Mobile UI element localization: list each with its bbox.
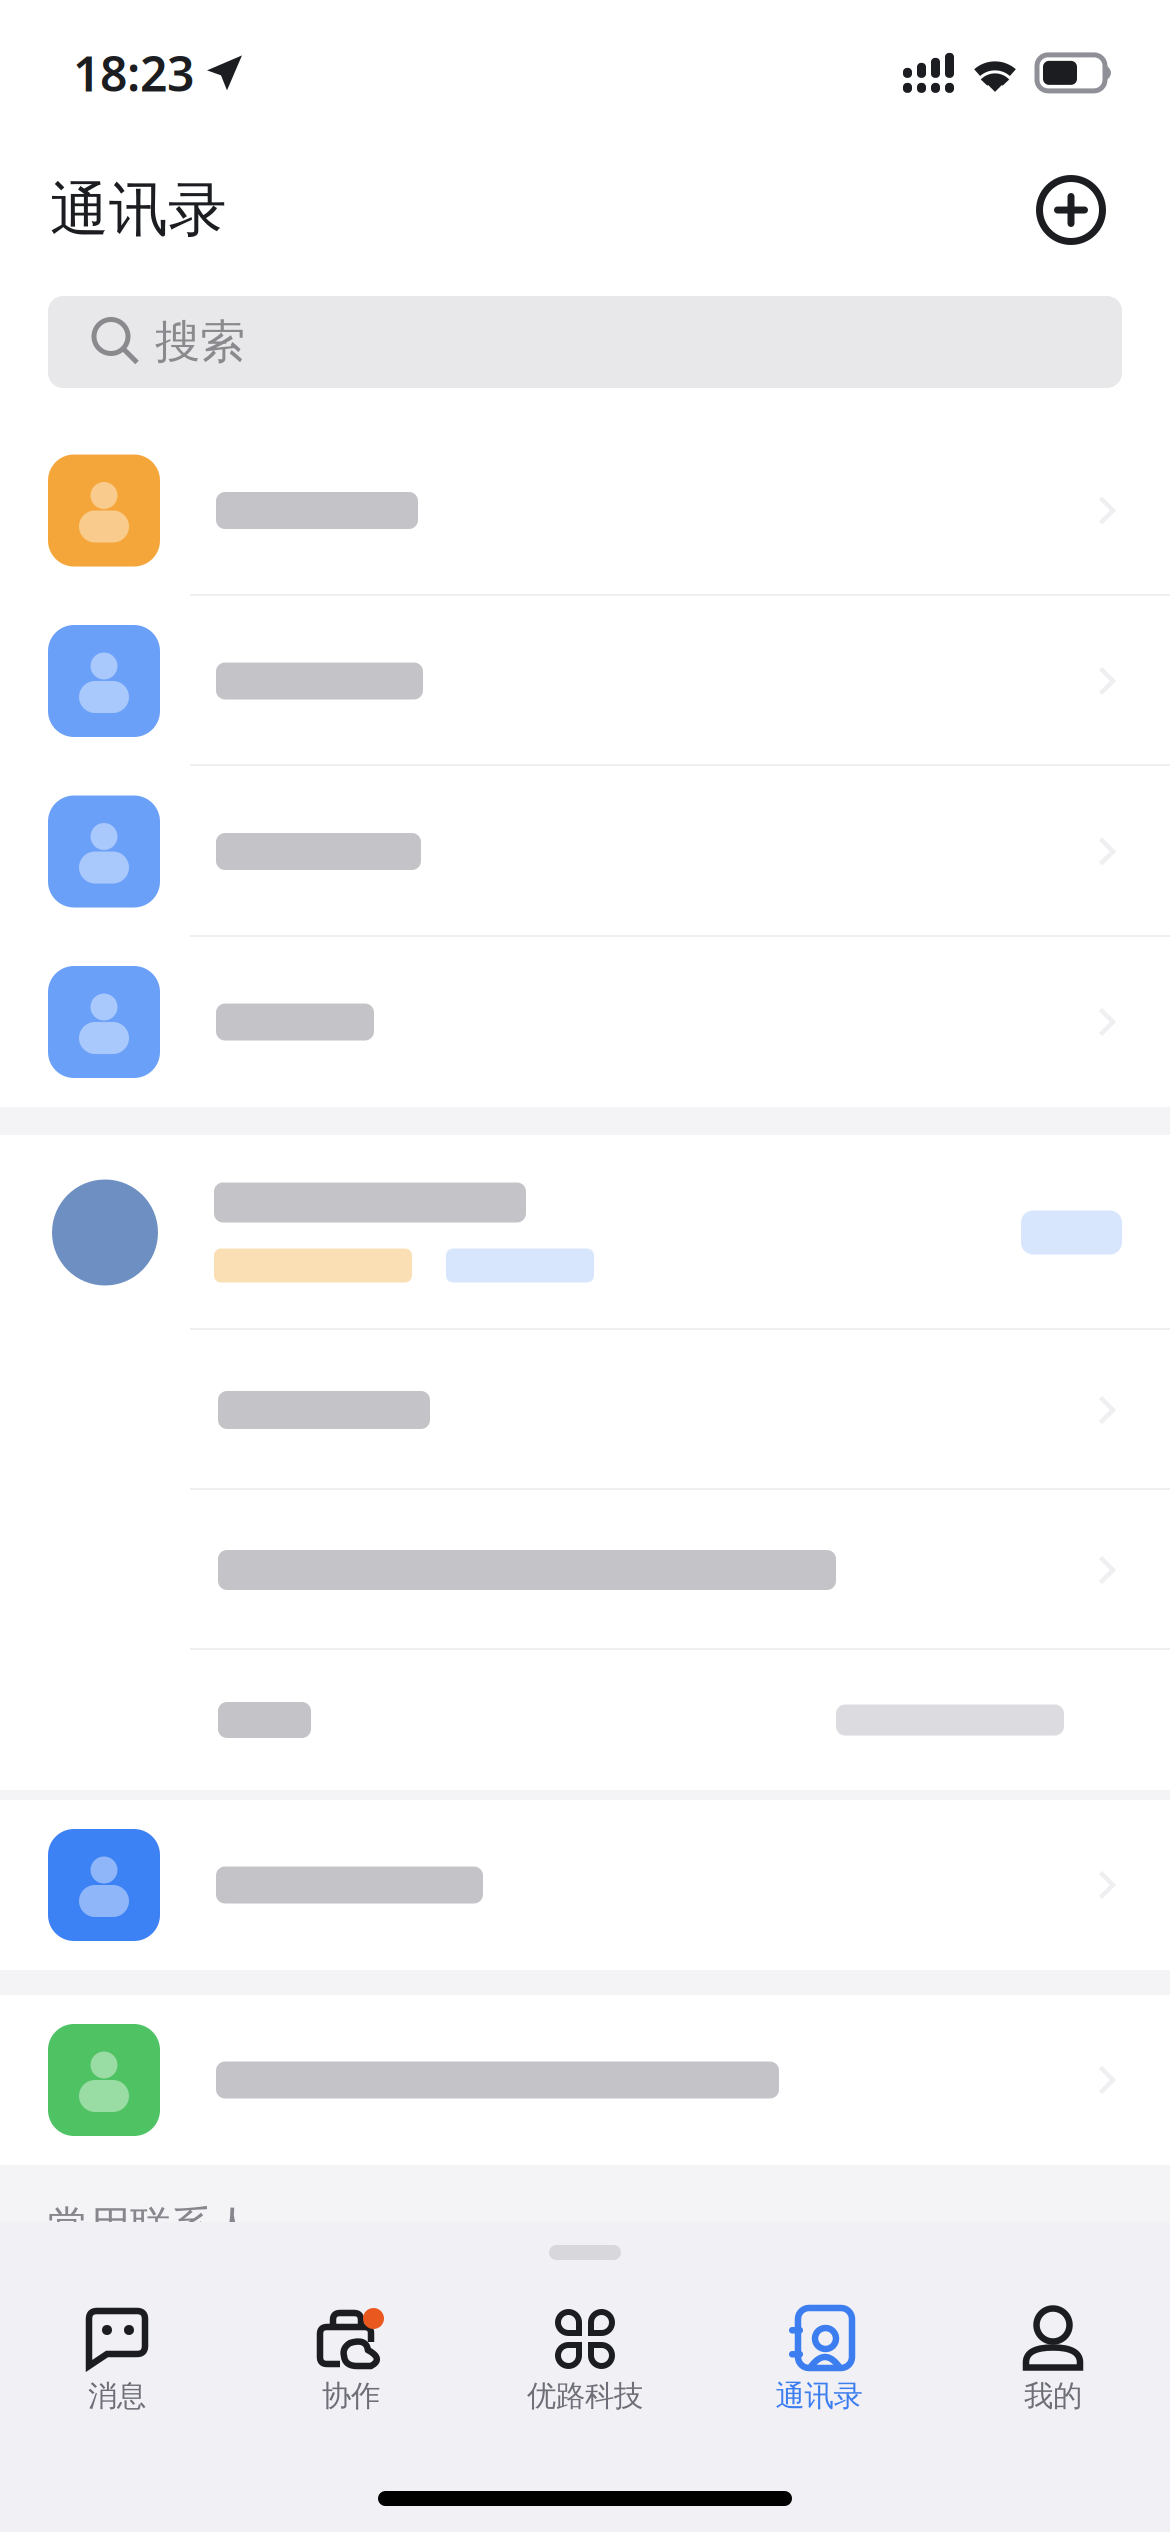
button[interactable]: 优路科技 (468, 2308, 702, 2418)
button[interactable]: 通讯录 (702, 2308, 936, 2418)
staticText: 优路科技 (527, 2378, 643, 2414)
button[interactable]: 我的 (936, 2308, 1170, 2418)
button[interactable] (0, 1135, 1170, 1330)
staticText: 消息 (88, 2378, 146, 2414)
button[interactable]: 搜索 (48, 296, 1122, 388)
staticText: 我的 (1024, 2378, 1082, 2414)
button[interactable] (0, 1490, 1170, 1650)
button[interactable]: 消息 (0, 2308, 234, 2418)
staticText: 通讯录 (50, 174, 227, 246)
button[interactable]: 添加联系人 (1025, 164, 1117, 256)
staticText: 常用联系人 (48, 2201, 253, 2252)
staticText: 通讯录 (775, 2378, 862, 2414)
button[interactable]: 协作 (234, 2308, 468, 2418)
staticText: 搜索 (155, 314, 245, 370)
button[interactable] (0, 937, 1170, 1107)
button[interactable] (0, 1995, 1170, 2165)
button[interactable] (0, 425, 1170, 596)
staticText: 18:23 (73, 41, 194, 105)
button[interactable] (0, 766, 1170, 937)
button[interactable] (0, 1650, 1170, 1790)
button[interactable] (0, 1330, 1170, 1490)
button[interactable] (0, 1800, 1170, 1970)
staticText: 协作 (322, 2378, 380, 2414)
button[interactable] (0, 596, 1170, 766)
